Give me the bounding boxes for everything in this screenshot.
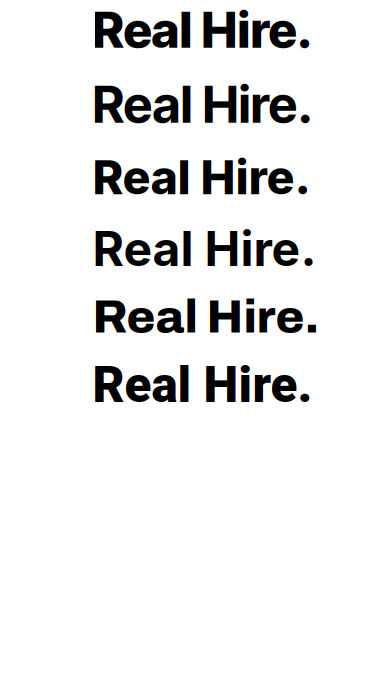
- staticText: Real Hire.: [92, 0, 312, 60]
- staticText: Real Hire.: [92, 74, 312, 135]
- staticText: Real Hire.: [92, 149, 310, 205]
- staticText: Real Hire.: [92, 291, 319, 342]
- staticText: Real Hire.: [92, 219, 316, 278]
- staticText: Real Hire.: [92, 356, 312, 414]
